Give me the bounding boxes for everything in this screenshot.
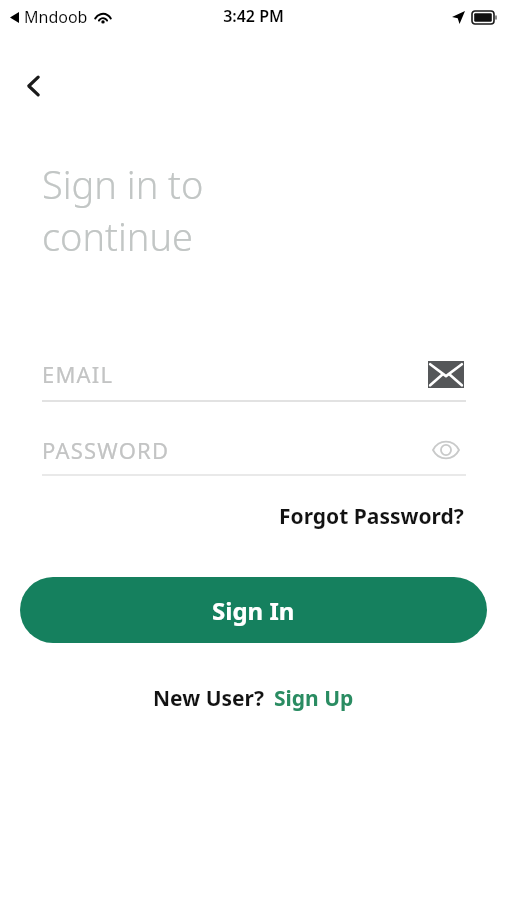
- button[interactable]: Forgot Password?: [277, 498, 466, 535]
- staticText: Mndoob: [24, 6, 88, 28]
- button[interactable]: PASSWORD: [42, 425, 466, 475]
- staticText: 3:42 PM: [223, 5, 284, 27]
- staticText: PASSWORD: [42, 435, 170, 465]
- staticText: Sign Up: [274, 684, 354, 713]
- staticText: New User?: [153, 684, 264, 713]
- staticText: continue: [42, 210, 194, 262]
- button[interactable]: Sign Up: [274, 684, 354, 713]
- staticText: EMAIL: [42, 359, 114, 389]
- staticText: Forgot Password?: [279, 502, 464, 531]
- button[interactable]: Back: [8, 60, 60, 112]
- button[interactable]: Sign In: [20, 577, 487, 643]
- button[interactable]: EMAIL: [42, 352, 466, 404]
- staticText: Sign In: [212, 594, 295, 627]
- button[interactable]: Email: [426, 354, 466, 394]
- staticText: Sign in to: [42, 158, 204, 210]
- button[interactable]: Show password: [426, 430, 466, 470]
